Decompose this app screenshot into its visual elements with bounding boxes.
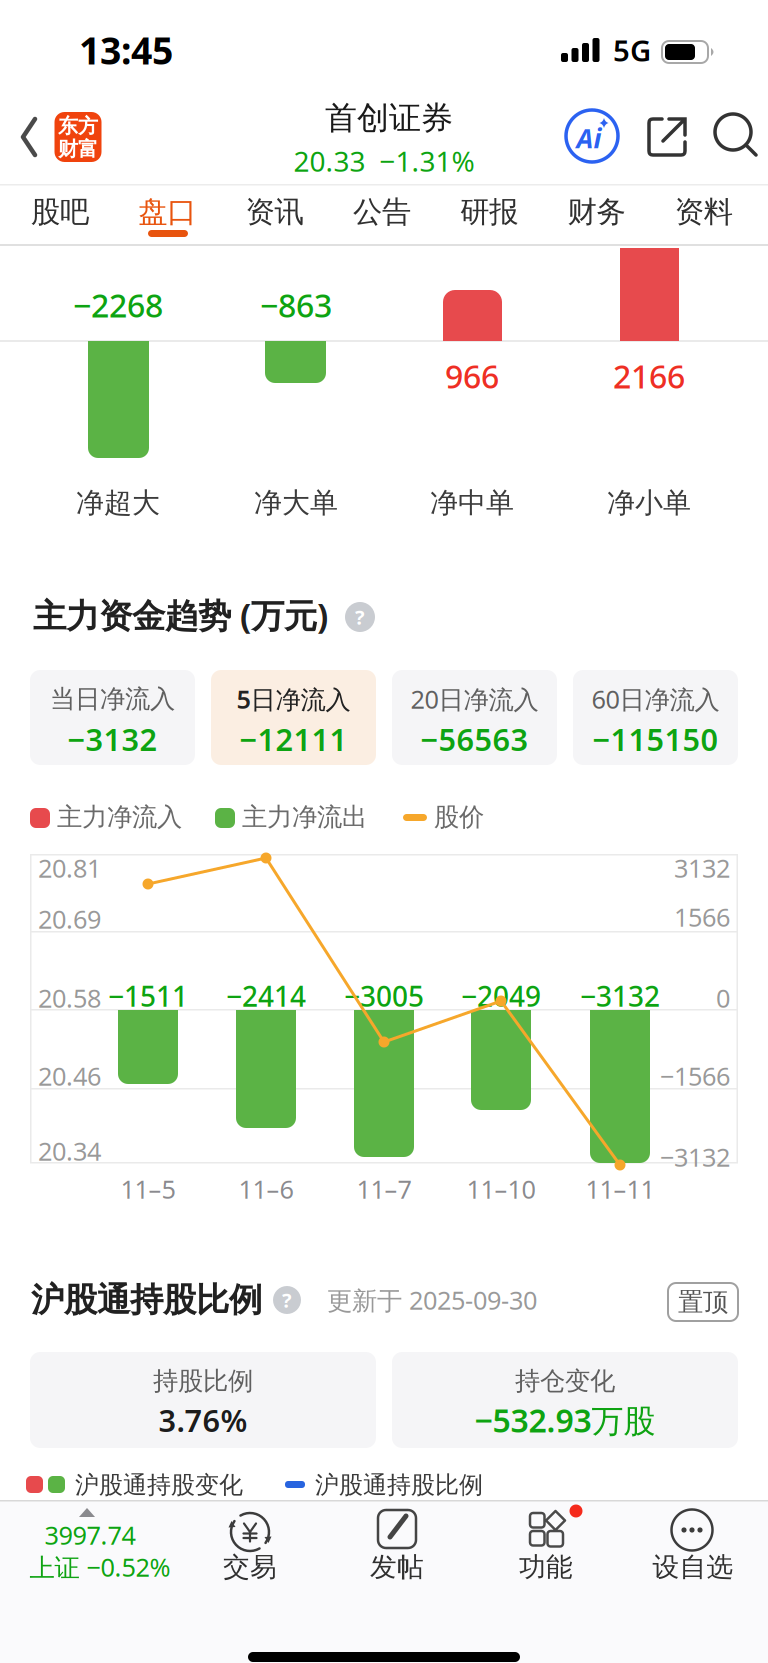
staticText: 持仓变化 bbox=[515, 1365, 615, 1396]
staticText: −56563 bbox=[420, 719, 528, 759]
staticText: 11–10 bbox=[466, 1172, 535, 1206]
staticText: 沪股通持股比例 bbox=[31, 1279, 262, 1320]
button[interactable]: 东方财富 bbox=[0, 0, 768, 1663]
staticText: −1566 bbox=[660, 1059, 730, 1093]
staticText: −115150 bbox=[592, 719, 718, 759]
staticText: 沪股通持股比例 bbox=[315, 1470, 483, 1500]
staticText: 功能 bbox=[519, 1551, 573, 1583]
button[interactable]: 5日净流入 bbox=[0, 0, 768, 1663]
button[interactable]: 盘口 bbox=[0, 0, 768, 1663]
staticText: 20.33 −1.31% bbox=[293, 142, 474, 180]
staticText: 财富 bbox=[58, 137, 98, 161]
staticText: −2414 bbox=[226, 977, 306, 1015]
staticText: 资讯 bbox=[246, 194, 304, 230]
button[interactable]: 交易 bbox=[0, 0, 768, 1663]
staticText: −1511 bbox=[108, 977, 188, 1015]
staticText: 20.58 bbox=[38, 981, 101, 1015]
staticText: −3132 bbox=[660, 1140, 730, 1174]
staticText: 20.46 bbox=[38, 1059, 101, 1093]
button[interactable]: 发帖 bbox=[0, 0, 768, 1663]
staticText: 净小单 bbox=[607, 486, 691, 520]
staticText: 2166 bbox=[613, 355, 685, 397]
staticText: −3005 bbox=[344, 977, 424, 1015]
button[interactable]: Back bbox=[0, 0, 768, 1663]
staticText: −863 bbox=[260, 284, 332, 326]
button[interactable]: Help bbox=[0, 0, 768, 1663]
staticText: 净大单 bbox=[254, 486, 338, 520]
staticText: 11–11 bbox=[585, 1172, 654, 1206]
button[interactable]: 置顶 bbox=[0, 0, 768, 1663]
staticText: 股吧 bbox=[31, 194, 89, 230]
button[interactable]: 研报 bbox=[0, 0, 768, 1663]
staticText: Ai bbox=[576, 120, 601, 156]
staticText: 财务 bbox=[567, 194, 625, 230]
staticText: −532.93万股 bbox=[474, 1399, 655, 1441]
staticText: 资料 bbox=[675, 194, 733, 230]
button[interactable]: AI assistant bbox=[0, 0, 768, 1663]
staticText: 当日净流入 bbox=[50, 683, 175, 714]
staticText: 首创证券 bbox=[325, 98, 453, 138]
staticText: 11–5 bbox=[120, 1172, 175, 1206]
button[interactable]: Help bbox=[0, 0, 768, 1663]
staticText: 股价 bbox=[434, 801, 484, 832]
staticText: 20.69 bbox=[38, 902, 101, 936]
staticText: −3132 bbox=[580, 977, 660, 1015]
button[interactable]: 资料 bbox=[0, 0, 768, 1663]
staticText: 5G bbox=[613, 30, 651, 69]
staticText: −12111 bbox=[239, 719, 347, 759]
button[interactable]: 股吧 bbox=[0, 0, 768, 1663]
staticText: 20.34 bbox=[38, 1134, 101, 1168]
button[interactable]: 60日净流入 bbox=[0, 0, 768, 1663]
button[interactable]: 资讯 bbox=[0, 0, 768, 1663]
staticText: 20.81 bbox=[38, 851, 101, 885]
button[interactable]: 公告 bbox=[0, 0, 768, 1663]
staticText: −2049 bbox=[461, 977, 541, 1015]
staticText: 净中单 bbox=[430, 486, 514, 520]
button[interactable]: 设自选 bbox=[0, 0, 768, 1663]
staticText: 20日净流入 bbox=[410, 682, 538, 716]
staticText: 主力资金趋势 (万元) bbox=[33, 593, 328, 637]
staticText: 上证 −0.52% bbox=[29, 1550, 170, 1584]
staticText: 沪股通持股变化 bbox=[75, 1470, 243, 1500]
staticText: ? bbox=[355, 604, 365, 630]
staticText: 公告 bbox=[353, 194, 411, 230]
button[interactable]: 20日净流入 bbox=[0, 0, 768, 1663]
staticText: 设自选 bbox=[652, 1551, 733, 1583]
staticText: 更新于 2025-09-30 bbox=[327, 1283, 537, 1317]
staticText: 持股比例 bbox=[153, 1365, 253, 1396]
button[interactable]: 当日净流入 bbox=[0, 0, 768, 1663]
staticText: 5日净流入 bbox=[236, 682, 350, 716]
staticText: 主力净流入 bbox=[57, 801, 182, 832]
button[interactable]: 功能 bbox=[0, 0, 768, 1663]
staticText: 3.76% bbox=[158, 1400, 247, 1440]
staticText: 11–6 bbox=[238, 1172, 293, 1206]
staticText: −2268 bbox=[73, 284, 163, 326]
button[interactable]: Share bbox=[0, 0, 768, 1663]
button[interactable]: 3997.74 bbox=[0, 0, 768, 1663]
staticText: 置顶 bbox=[678, 1286, 728, 1317]
staticText: 研报 bbox=[460, 194, 518, 230]
staticText: −3132 bbox=[67, 719, 157, 759]
staticText: 盘口 bbox=[138, 194, 196, 230]
staticText: 交易 bbox=[223, 1551, 277, 1583]
staticText: 13:45 bbox=[79, 25, 173, 75]
staticText: 0 bbox=[716, 981, 730, 1015]
staticText: 1566 bbox=[674, 900, 730, 934]
staticText: 东方 bbox=[58, 114, 98, 138]
button[interactable]: 财务 bbox=[0, 0, 768, 1663]
staticText: 主力净流出 bbox=[242, 801, 367, 832]
staticText: 净超大 bbox=[76, 486, 160, 520]
staticText: 11–7 bbox=[356, 1172, 411, 1206]
staticText: ? bbox=[282, 1287, 292, 1313]
button[interactable]: Search bbox=[0, 0, 768, 1663]
staticText: 发帖 bbox=[370, 1551, 424, 1583]
staticText: 60日净流入 bbox=[591, 682, 719, 716]
staticText: 3997.74 bbox=[44, 1518, 135, 1552]
staticText: 966 bbox=[445, 355, 499, 397]
staticText: 3132 bbox=[674, 851, 730, 885]
